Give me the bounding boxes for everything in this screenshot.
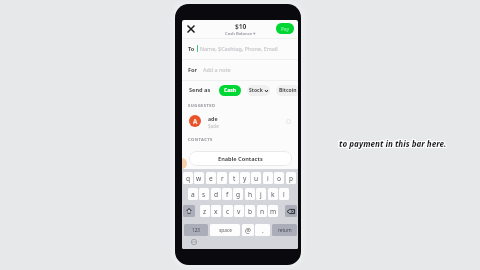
- staticText: e: [209, 174, 213, 183]
- staticText: Enable Contacts: [218, 155, 263, 163]
- staticText: l: [283, 190, 285, 199]
- button[interactable]: x: [211, 205, 221, 217]
- staticText: w: [196, 174, 202, 183]
- button[interactable]: 123: [184, 224, 208, 236]
- button[interactable]: e: [206, 172, 216, 184]
- staticText: 123: [192, 227, 200, 233]
- staticText: r: [221, 174, 224, 183]
- button[interactable]: h: [245, 188, 255, 200]
- button[interactable]: m: [268, 205, 278, 217]
- staticText: A: [193, 117, 198, 125]
- staticText: Cash: [224, 87, 236, 94]
- button[interactable]: Pay: [276, 23, 294, 34]
- staticText: Send as: [189, 86, 211, 94]
- button[interactable]: To: [182, 39, 298, 58]
- staticText: $10: [235, 22, 247, 31]
- staticText: To: [188, 45, 195, 53]
- button[interactable]: g: [233, 188, 243, 200]
- staticText: d: [214, 190, 219, 199]
- button[interactable]: l: [279, 188, 289, 200]
- staticText: h: [248, 190, 253, 199]
- button[interactable]: n: [257, 205, 267, 217]
- button[interactable]: d: [211, 188, 221, 200]
- staticText: space: [219, 227, 232, 234]
- button[interactable]: b: [245, 205, 255, 217]
- staticText: ade: [208, 115, 218, 122]
- staticText: SUGGESTED: [188, 103, 216, 109]
- button[interactable]: space: [210, 224, 240, 236]
- staticText: y: [243, 174, 247, 183]
- button[interactable]: A: [182, 109, 298, 133]
- button[interactable]: i: [263, 172, 273, 184]
- button[interactable]: .: [255, 224, 270, 236]
- staticText: t: [233, 174, 236, 183]
- staticText: f: [226, 190, 229, 199]
- staticText: @: [245, 226, 251, 235]
- staticText: b: [248, 207, 253, 216]
- staticText: i: [267, 174, 269, 183]
- staticText: z: [203, 207, 207, 216]
- staticText: u: [254, 174, 259, 183]
- staticText: x: [214, 207, 218, 216]
- button[interactable]: return: [272, 224, 297, 236]
- button[interactable]: a: [188, 188, 198, 200]
- staticText: Stock: [249, 87, 263, 94]
- button[interactable]: r: [217, 172, 227, 184]
- staticText: $ade: [208, 123, 219, 129]
- staticText: return: [278, 227, 292, 233]
- button[interactable]: Bitcoin: [276, 85, 298, 96]
- button[interactable]: j: [256, 188, 266, 200]
- staticText: CONTACTS: [188, 137, 213, 143]
- button[interactable]: o: [274, 172, 284, 184]
- staticText: g: [236, 190, 241, 199]
- button[interactable]: Backspace: [285, 205, 297, 217]
- staticText: Cash Balance ▾: [225, 30, 256, 36]
- staticText: .: [262, 226, 264, 235]
- button[interactable]: s: [199, 188, 209, 200]
- staticText: o: [277, 174, 281, 183]
- button[interactable]: k: [268, 188, 278, 200]
- button[interactable]: @: [242, 224, 254, 236]
- staticText: c: [226, 207, 230, 216]
- button[interactable]: Shift: [183, 205, 195, 217]
- staticText: to payment in this bar here.: [339, 138, 447, 149]
- button[interactable]: v: [234, 205, 244, 217]
- staticText: For: [188, 66, 198, 74]
- button[interactable]: Stock: [247, 85, 270, 96]
- button[interactable]: p: [286, 172, 296, 184]
- button[interactable]: q: [183, 172, 193, 184]
- staticText: s: [202, 190, 206, 199]
- other: Switch keyboard: [191, 239, 197, 245]
- button[interactable]: Close: [185, 23, 197, 35]
- staticText: Pay: [281, 26, 290, 32]
- staticText: n: [260, 207, 265, 216]
- button[interactable]: f: [222, 188, 232, 200]
- staticText: v: [237, 207, 241, 216]
- staticText: a: [191, 190, 195, 199]
- button[interactable]: t: [229, 172, 239, 184]
- button[interactable]: Enable Contacts: [189, 151, 292, 166]
- button[interactable]: Cash: [219, 85, 241, 96]
- button[interactable]: For: [182, 60, 298, 79]
- button[interactable]: w: [194, 172, 204, 184]
- staticText: p: [289, 174, 294, 183]
- staticText: Add a note: [203, 66, 231, 73]
- staticText: j: [260, 190, 262, 199]
- button[interactable]: z: [200, 205, 210, 217]
- staticText: Name, $Cashtag, Phone, Email: [200, 45, 278, 52]
- staticText: to payment in this bar here.: [339, 138, 447, 149]
- staticText: k: [271, 190, 275, 199]
- staticText: Bitcoin: [279, 87, 297, 94]
- button[interactable]: y: [240, 172, 250, 184]
- staticText: q: [186, 174, 191, 183]
- button[interactable]: c: [223, 205, 233, 217]
- staticText: m: [270, 207, 277, 216]
- button[interactable]: u: [251, 172, 261, 184]
